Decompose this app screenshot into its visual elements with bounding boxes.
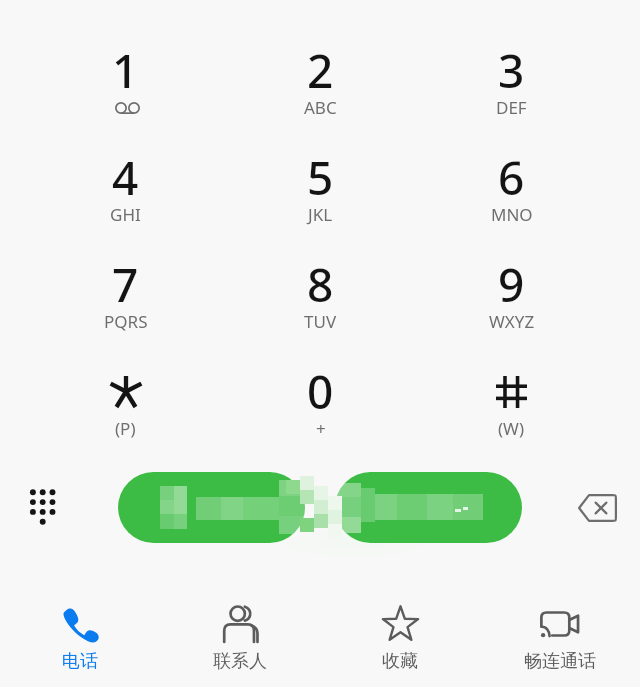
- staticText: 7: [112, 253, 139, 313]
- button[interactable]: [29, 241, 222, 348]
- button[interactable]: [29, 134, 222, 241]
- button[interactable]: [29, 348, 222, 455]
- button[interactable]: [415, 27, 608, 134]
- staticText: 9: [498, 253, 525, 313]
- staticText: ABC: [304, 96, 337, 119]
- staticText: PQRS: [104, 310, 148, 333]
- staticText: 联系人: [213, 650, 267, 673]
- button[interactable]: [415, 348, 608, 455]
- button[interactable]: Show dialpad: [16, 481, 69, 534]
- staticText: WXYZ: [489, 310, 535, 333]
- button[interactable]: 联系人: [160, 577, 320, 687]
- staticText: 1: [112, 39, 139, 99]
- staticText: 3: [498, 39, 525, 99]
- button[interactable]: [224, 134, 417, 241]
- staticText: 6: [498, 146, 525, 206]
- staticText: TUV: [304, 310, 337, 333]
- staticText: (P): [115, 417, 136, 440]
- staticText: (W): [498, 417, 525, 440]
- staticText: 4: [112, 146, 139, 206]
- staticText: 0: [307, 360, 334, 420]
- staticText: DEF: [496, 96, 527, 119]
- staticText: 畅连通话: [524, 650, 596, 673]
- button[interactable]: [224, 348, 417, 455]
- staticText: MNO: [491, 203, 533, 226]
- staticText: 8: [307, 253, 334, 313]
- staticText: JKL: [308, 203, 333, 226]
- staticText: 收藏: [382, 650, 418, 673]
- button[interactable]: [224, 27, 417, 134]
- button[interactable]: [415, 134, 608, 241]
- button[interactable]: [29, 27, 222, 134]
- button[interactable]: 收藏: [320, 577, 480, 687]
- button[interactable]: [415, 241, 608, 348]
- button[interactable]: 畅连通话: [480, 577, 640, 687]
- staticText: +: [316, 417, 326, 440]
- staticText: 电话: [62, 650, 98, 673]
- button[interactable]: 电话: [0, 577, 160, 687]
- button[interactable]: [224, 241, 417, 348]
- button[interactable]: Call with SIM 1: [118, 472, 305, 543]
- staticText: GHI: [110, 203, 141, 226]
- button[interactable]: Call with SIM 2: [335, 472, 522, 543]
- button[interactable]: Backspace: [571, 482, 623, 534]
- staticText: 5: [307, 146, 334, 206]
- staticText: 2: [307, 39, 334, 99]
